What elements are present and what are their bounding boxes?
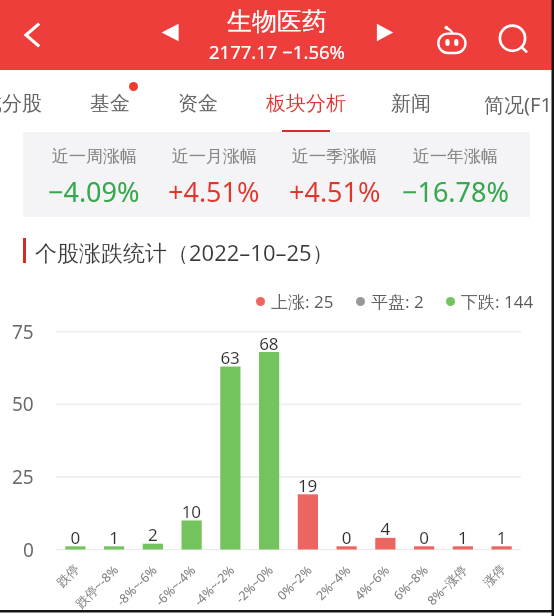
button[interactable]: 近一年涨幅 bbox=[395, 132, 516, 217]
staticText: +4.51% bbox=[289, 173, 381, 210]
staticText: −16.78% bbox=[402, 173, 509, 210]
staticText: 资金 bbox=[178, 91, 218, 116]
staticText: +4.51% bbox=[168, 173, 260, 210]
button[interactable]: 板块分析 bbox=[256, 70, 356, 134]
staticText: 板块分析 bbox=[266, 91, 346, 116]
staticText: 2177.17 −1.56% bbox=[209, 39, 345, 64]
button[interactable]: 近一月涨幅 bbox=[154, 132, 274, 217]
staticText: 成分股 bbox=[0, 91, 42, 116]
button[interactable]: Back bbox=[8, 11, 56, 59]
staticText: 个股涨跌统计（2022–10–25） bbox=[35, 237, 334, 264]
staticText: −4.09% bbox=[48, 173, 140, 210]
button[interactable]: Previous sector bbox=[148, 14, 194, 60]
staticText: 下跌: 144 bbox=[461, 290, 534, 312]
button[interactable]: 基金 bbox=[60, 70, 160, 134]
staticText: 简况(F10) bbox=[484, 91, 554, 118]
staticText: 近一季涨幅 bbox=[292, 146, 377, 167]
staticText: 平盘: 2 bbox=[371, 290, 424, 312]
button[interactable]: 下跌: 144 bbox=[446, 290, 534, 312]
button[interactable]: Next sector bbox=[363, 14, 409, 60]
button[interactable]: 近一周涨幅 bbox=[34, 132, 154, 217]
staticText: 近一年涨幅 bbox=[413, 146, 498, 167]
button[interactable]: 上涨: 25 bbox=[256, 290, 334, 312]
staticText: 基金 bbox=[90, 91, 130, 116]
staticText: 近一周涨幅 bbox=[52, 146, 137, 167]
staticText: 上涨: 25 bbox=[271, 290, 334, 312]
staticText: 生物医药 bbox=[227, 6, 327, 37]
staticText: 近一月涨幅 bbox=[172, 146, 257, 167]
button[interactable]: 平盘: 2 bbox=[356, 290, 424, 312]
staticText: 新闻 bbox=[391, 91, 431, 116]
button[interactable]: Assistant bbox=[429, 12, 475, 58]
button[interactable]: 近一季涨幅 bbox=[274, 132, 395, 217]
button[interactable]: 新闻 bbox=[361, 70, 461, 134]
button[interactable]: Search bbox=[490, 12, 536, 58]
button[interactable]: 简况(F10) bbox=[477, 70, 554, 134]
button[interactable]: 资金 bbox=[148, 70, 248, 134]
button[interactable]: 成分股 bbox=[0, 70, 62, 134]
